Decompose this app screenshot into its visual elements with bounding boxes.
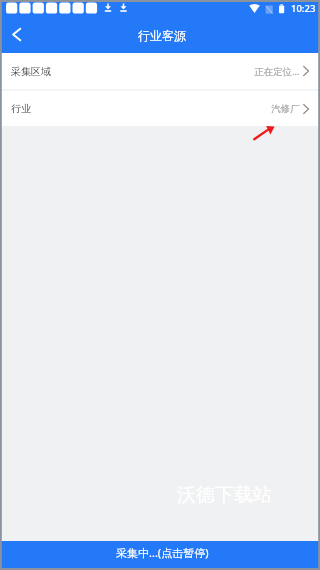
button[interactable]: 采集中...(点击暂停) (0, 541, 320, 568)
staticText: 采集中...(点击暂停) (116, 545, 209, 560)
staticText: 汽修厂 (271, 103, 300, 115)
staticText: 采集区域 (11, 65, 51, 78)
button[interactable]: 行业 (0, 91, 320, 126)
staticText: 10:23 (291, 2, 316, 15)
button[interactable]: 采集区域 (0, 53, 320, 89)
staticText: 正在定位... (254, 65, 300, 78)
staticText: 沃德下载站 (177, 483, 272, 507)
staticText: 行业 (11, 102, 31, 115)
button[interactable]: Back (0, 16, 33, 53)
staticText: 行业客源 (138, 28, 186, 43)
